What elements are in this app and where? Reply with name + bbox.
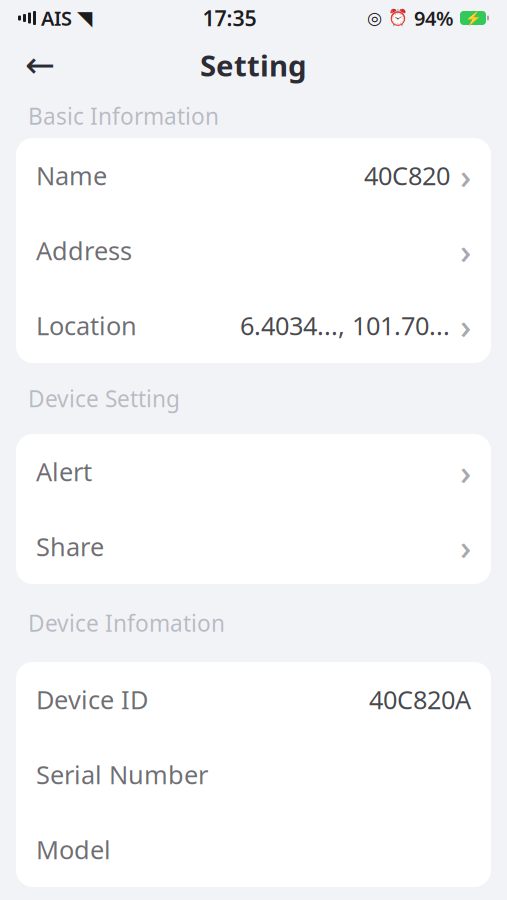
- staticText: Basic Information: [28, 101, 219, 131]
- staticText: ⚡: [464, 10, 481, 26]
- button[interactable]: Alert: [16, 434, 491, 509]
- button[interactable]: Name: [16, 138, 491, 213]
- staticText: Serial Number: [36, 758, 208, 791]
- staticText: Location: [36, 309, 137, 342]
- staticText: ›: [460, 227, 471, 273]
- staticText: 40C820A: [369, 683, 471, 716]
- staticText: Share: [36, 530, 104, 563]
- staticText: Address: [36, 234, 132, 267]
- staticText: Alert: [36, 455, 92, 488]
- button[interactable]: Model: [16, 812, 491, 887]
- staticText: 6.4034..., 101.70...: [240, 309, 450, 342]
- staticText: 17:35: [202, 4, 256, 32]
- button[interactable]: Device ID: [16, 662, 491, 737]
- staticText: ◎: [367, 8, 382, 28]
- staticText: ›: [460, 523, 471, 569]
- staticText: Device ID: [36, 683, 148, 716]
- staticText: 40C820: [364, 159, 450, 192]
- staticText: 94%: [414, 5, 454, 31]
- staticText: ←: [25, 45, 55, 85]
- staticText: ⏰: [388, 9, 408, 27]
- staticText: ›: [460, 302, 471, 348]
- button[interactable]: Serial Number: [16, 737, 491, 812]
- staticText: Name: [36, 159, 107, 192]
- button[interactable]: Address: [16, 213, 491, 288]
- staticText: Device Setting: [28, 383, 180, 413]
- button[interactable]: Back: [16, 41, 64, 89]
- staticText: AIS: [41, 5, 72, 31]
- staticText: ›: [460, 152, 471, 198]
- staticText: ◥: [77, 7, 92, 29]
- staticText: Device Infomation: [28, 608, 225, 638]
- staticText: ›: [460, 448, 471, 494]
- button[interactable]: Location: [16, 288, 491, 363]
- staticText: Model: [36, 833, 111, 866]
- staticText: Setting: [200, 45, 307, 84]
- button[interactable]: Share: [16, 509, 491, 584]
